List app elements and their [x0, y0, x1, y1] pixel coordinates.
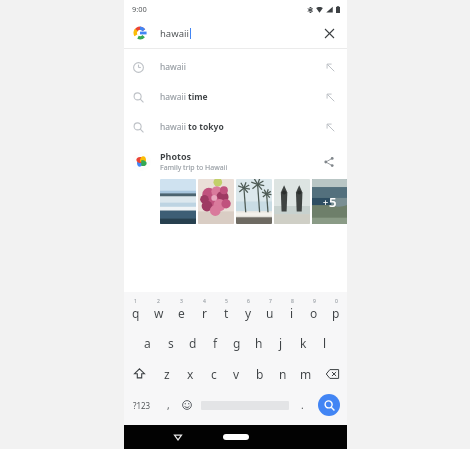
staticText: g	[233, 335, 241, 351]
button[interactable]: hawaii to tokyo	[124, 112, 347, 142]
button[interactable]: 4	[193, 295, 215, 327]
staticText: hawaii	[160, 27, 189, 40]
staticText: hawaii to tokyo	[160, 121, 224, 133]
button[interactable]: .	[293, 389, 311, 421]
button[interactable]: Emoji	[177, 389, 197, 421]
button[interactable]: h	[248, 327, 270, 358]
staticText: d	[189, 335, 197, 351]
button[interactable]: Photo 2	[198, 179, 234, 224]
staticText: b	[256, 366, 264, 382]
button[interactable]: f	[204, 327, 226, 358]
staticText: 9	[313, 298, 316, 305]
staticText: j	[279, 335, 283, 351]
staticText: l	[323, 335, 327, 351]
staticText: e	[178, 305, 185, 321]
button[interactable]: Share	[320, 153, 338, 171]
button[interactable]: Backspace	[317, 358, 347, 389]
staticText: 9:00	[132, 4, 147, 14]
staticText: r	[202, 305, 207, 321]
staticText: k	[300, 335, 307, 351]
staticText: i	[290, 305, 294, 321]
staticText: m	[300, 366, 312, 382]
staticText: 2	[157, 298, 160, 305]
button[interactable]: j	[270, 327, 292, 358]
button[interactable]: Photo 5	[312, 179, 347, 224]
staticText: y	[245, 305, 252, 321]
staticText: ,	[167, 398, 170, 412]
staticText: c	[211, 366, 217, 382]
button[interactable]: ?123	[124, 389, 159, 421]
button[interactable]: hawaii	[124, 52, 347, 82]
button[interactable]: c	[202, 358, 225, 389]
button[interactable]: Photos	[124, 148, 347, 173]
staticText: u	[266, 305, 274, 321]
button[interactable]: hawaii	[124, 18, 347, 48]
button[interactable]: n	[271, 358, 294, 389]
button[interactable]: Insert suggestion	[322, 59, 338, 75]
button[interactable]: 2	[147, 295, 170, 327]
staticText: n	[279, 366, 287, 382]
button[interactable]: Photo 3	[236, 179, 272, 224]
button[interactable]: Photo 1	[160, 179, 196, 224]
button[interactable]: ,	[159, 389, 177, 421]
staticText: 6	[247, 298, 250, 305]
button[interactable]: Insert suggestion	[322, 89, 338, 105]
button[interactable]: s	[159, 327, 182, 358]
button[interactable]: 7	[259, 295, 281, 327]
staticText: 4	[203, 298, 206, 305]
staticText: +	[323, 196, 329, 208]
button[interactable]: 1	[124, 295, 147, 327]
staticText: .	[301, 398, 304, 412]
button[interactable]: Search	[318, 394, 340, 416]
button[interactable]: 3	[170, 295, 193, 327]
button[interactable]: b	[248, 358, 271, 389]
staticText: h	[255, 335, 263, 351]
button[interactable]: Hide keyboard	[170, 429, 186, 445]
staticText: 1	[134, 298, 137, 305]
staticText: t	[224, 305, 229, 321]
staticText: 7	[269, 298, 272, 305]
staticText: 8	[291, 298, 294, 305]
button[interactable]: 5	[215, 295, 237, 327]
staticText: ?123	[133, 400, 151, 411]
staticText: a	[144, 335, 151, 351]
staticText: 5	[329, 193, 337, 211]
staticText: s	[168, 335, 174, 351]
button[interactable]: g	[226, 327, 248, 358]
button[interactable]: 0	[325, 295, 347, 327]
staticText: hawaii time	[160, 91, 208, 103]
button[interactable]: 6	[237, 295, 259, 327]
staticText: Family trip to Hawaii	[160, 163, 228, 173]
button[interactable]: Shift	[124, 358, 155, 389]
button[interactable]: z	[155, 358, 179, 389]
staticText: p	[332, 305, 340, 321]
button[interactable]: Photo 4	[274, 179, 310, 224]
button[interactable]: 8	[281, 295, 303, 327]
button[interactable]: v	[225, 358, 248, 389]
button[interactable]: l	[314, 327, 336, 358]
button[interactable]: Space	[197, 389, 293, 421]
staticText: v	[233, 366, 240, 382]
staticText: Photos	[160, 150, 192, 162]
staticText: 5	[225, 298, 228, 305]
staticText: q	[132, 305, 140, 321]
staticText: z	[164, 366, 170, 382]
staticText: hawaii	[160, 61, 186, 73]
button[interactable]: m	[294, 358, 317, 389]
button[interactable]: x	[179, 358, 202, 389]
staticText: x	[187, 366, 194, 382]
button[interactable]: hawaii time	[124, 82, 347, 112]
button[interactable]: a	[136, 327, 159, 358]
button[interactable]: 9	[303, 295, 325, 327]
button[interactable]: d	[182, 327, 204, 358]
staticText: 3	[180, 298, 183, 305]
button[interactable]: Home	[223, 434, 249, 440]
staticText: o	[310, 305, 318, 321]
staticText: 0	[335, 298, 338, 305]
staticText: w	[154, 305, 164, 321]
button[interactable]: Insert suggestion	[322, 119, 338, 135]
button[interactable]: k	[292, 327, 314, 358]
staticText: f	[213, 335, 218, 351]
button[interactable]: Clear query	[320, 24, 338, 42]
